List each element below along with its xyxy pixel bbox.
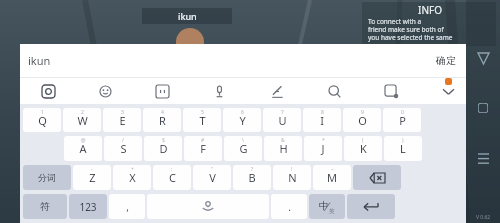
button[interactable]: Stickers <box>152 81 172 101</box>
button[interactable]: P <box>383 108 421 132</box>
button[interactable]: V <box>193 165 231 190</box>
button[interactable]: Collapse keyboard <box>438 81 458 101</box>
button[interactable]: Z <box>73 165 111 190</box>
staticText: V 0.62 <box>476 214 491 221</box>
button[interactable]: C <box>153 165 191 190</box>
button[interactable]: M <box>313 165 351 190</box>
staticText: W <box>77 113 88 128</box>
staticText: 5 <box>201 109 204 116</box>
button[interactable]: Search <box>324 81 344 101</box>
staticText: " <box>211 166 214 173</box>
staticText: 确定 <box>436 54 456 67</box>
button[interactable]: D <box>144 136 182 161</box>
button[interactable]: T <box>183 108 221 132</box>
button[interactable]: S <box>104 136 142 161</box>
staticText: ikun <box>178 10 197 22</box>
staticText: B <box>248 170 256 185</box>
button[interactable] <box>147 194 269 219</box>
staticText: 2 <box>81 109 84 116</box>
staticText: N <box>288 170 297 185</box>
button[interactable]: Sogou keyboard <box>38 81 58 101</box>
button[interactable]: 中 <box>309 194 345 219</box>
button[interactable]: K <box>344 136 382 161</box>
staticText: 4 <box>161 109 164 116</box>
staticText: U <box>278 113 287 128</box>
staticText: INFO <box>368 3 492 17</box>
staticText: A <box>79 141 87 156</box>
staticText: 8 <box>321 109 324 116</box>
staticText: ikun <box>28 53 436 68</box>
staticText: 英 <box>329 208 335 215</box>
button[interactable]: Back <box>473 48 493 68</box>
staticText: ~ <box>331 166 334 173</box>
button[interactable]: W <box>63 108 101 132</box>
button[interactable]: J <box>304 136 342 161</box>
button[interactable]: X <box>113 165 151 190</box>
staticText: & <box>281 137 285 144</box>
button[interactable]: Handwriting <box>267 81 287 101</box>
button[interactable]: 分词 <box>23 165 71 190</box>
staticText: : <box>171 166 173 173</box>
staticText: To connect with a friend make sure both … <box>368 17 453 42</box>
staticText: 符 <box>40 200 50 213</box>
button[interactable]: Emoji <box>95 81 115 101</box>
staticText: G <box>239 141 248 156</box>
staticText: J <box>321 141 325 156</box>
staticText: S <box>120 141 127 156</box>
button[interactable]: G <box>224 136 262 161</box>
button[interactable]: 符 <box>23 194 67 219</box>
button[interactable]: Recent apps <box>473 148 493 168</box>
staticText: 0 <box>401 109 404 116</box>
button[interactable]: 确定 <box>436 54 456 67</box>
staticText: H <box>279 141 288 156</box>
button[interactable]: O <box>343 108 381 132</box>
button[interactable]: Q <box>23 108 61 132</box>
button[interactable]: Home <box>473 98 493 118</box>
button[interactable]: Y <box>223 108 261 132</box>
button[interactable]: Clipboard <box>381 81 401 101</box>
button[interactable]: L <box>384 136 422 161</box>
staticText: * <box>322 137 325 144</box>
button[interactable] <box>353 165 401 190</box>
staticText: 7 <box>281 109 284 116</box>
staticText: E <box>119 113 126 128</box>
button[interactable]: Voice input <box>209 81 229 101</box>
staticText: T <box>199 113 206 128</box>
button[interactable]: R <box>143 108 181 132</box>
button[interactable]: 123 <box>69 194 107 219</box>
button[interactable]: INFO <box>362 2 496 46</box>
staticText: C <box>169 170 176 185</box>
button[interactable]: E <box>103 108 141 132</box>
button[interactable]: B <box>233 165 271 190</box>
button[interactable]: N <box>273 165 311 190</box>
staticText: 1 <box>41 109 44 116</box>
button[interactable]: F <box>184 136 222 161</box>
staticText: ( <box>362 137 364 144</box>
button[interactable]: A <box>64 136 102 161</box>
staticText: I <box>320 113 324 128</box>
staticText: D <box>159 141 168 156</box>
staticText: + <box>131 166 134 173</box>
staticText: \ <box>242 137 244 144</box>
button[interactable]: H <box>264 136 302 161</box>
button[interactable]: . <box>271 194 307 219</box>
staticText: . <box>288 200 291 214</box>
button[interactable]: , <box>109 194 145 219</box>
staticText: O <box>358 113 367 128</box>
staticText: / <box>122 137 124 144</box>
staticText: K <box>360 141 367 156</box>
button[interactable]: I <box>303 108 341 132</box>
staticText: , <box>126 200 129 214</box>
button[interactable]: U <box>263 108 301 132</box>
staticText: L <box>400 141 406 156</box>
staticText: 6 <box>241 109 244 116</box>
staticText: R <box>159 113 166 128</box>
staticText: 9 <box>361 109 364 116</box>
staticText: 3 <box>121 109 124 116</box>
button[interactable] <box>347 194 395 219</box>
staticText: X <box>129 170 136 185</box>
staticText: 中 <box>319 199 329 212</box>
staticText: P <box>399 113 406 128</box>
staticText: Z <box>89 170 96 185</box>
staticText: F <box>200 141 206 156</box>
